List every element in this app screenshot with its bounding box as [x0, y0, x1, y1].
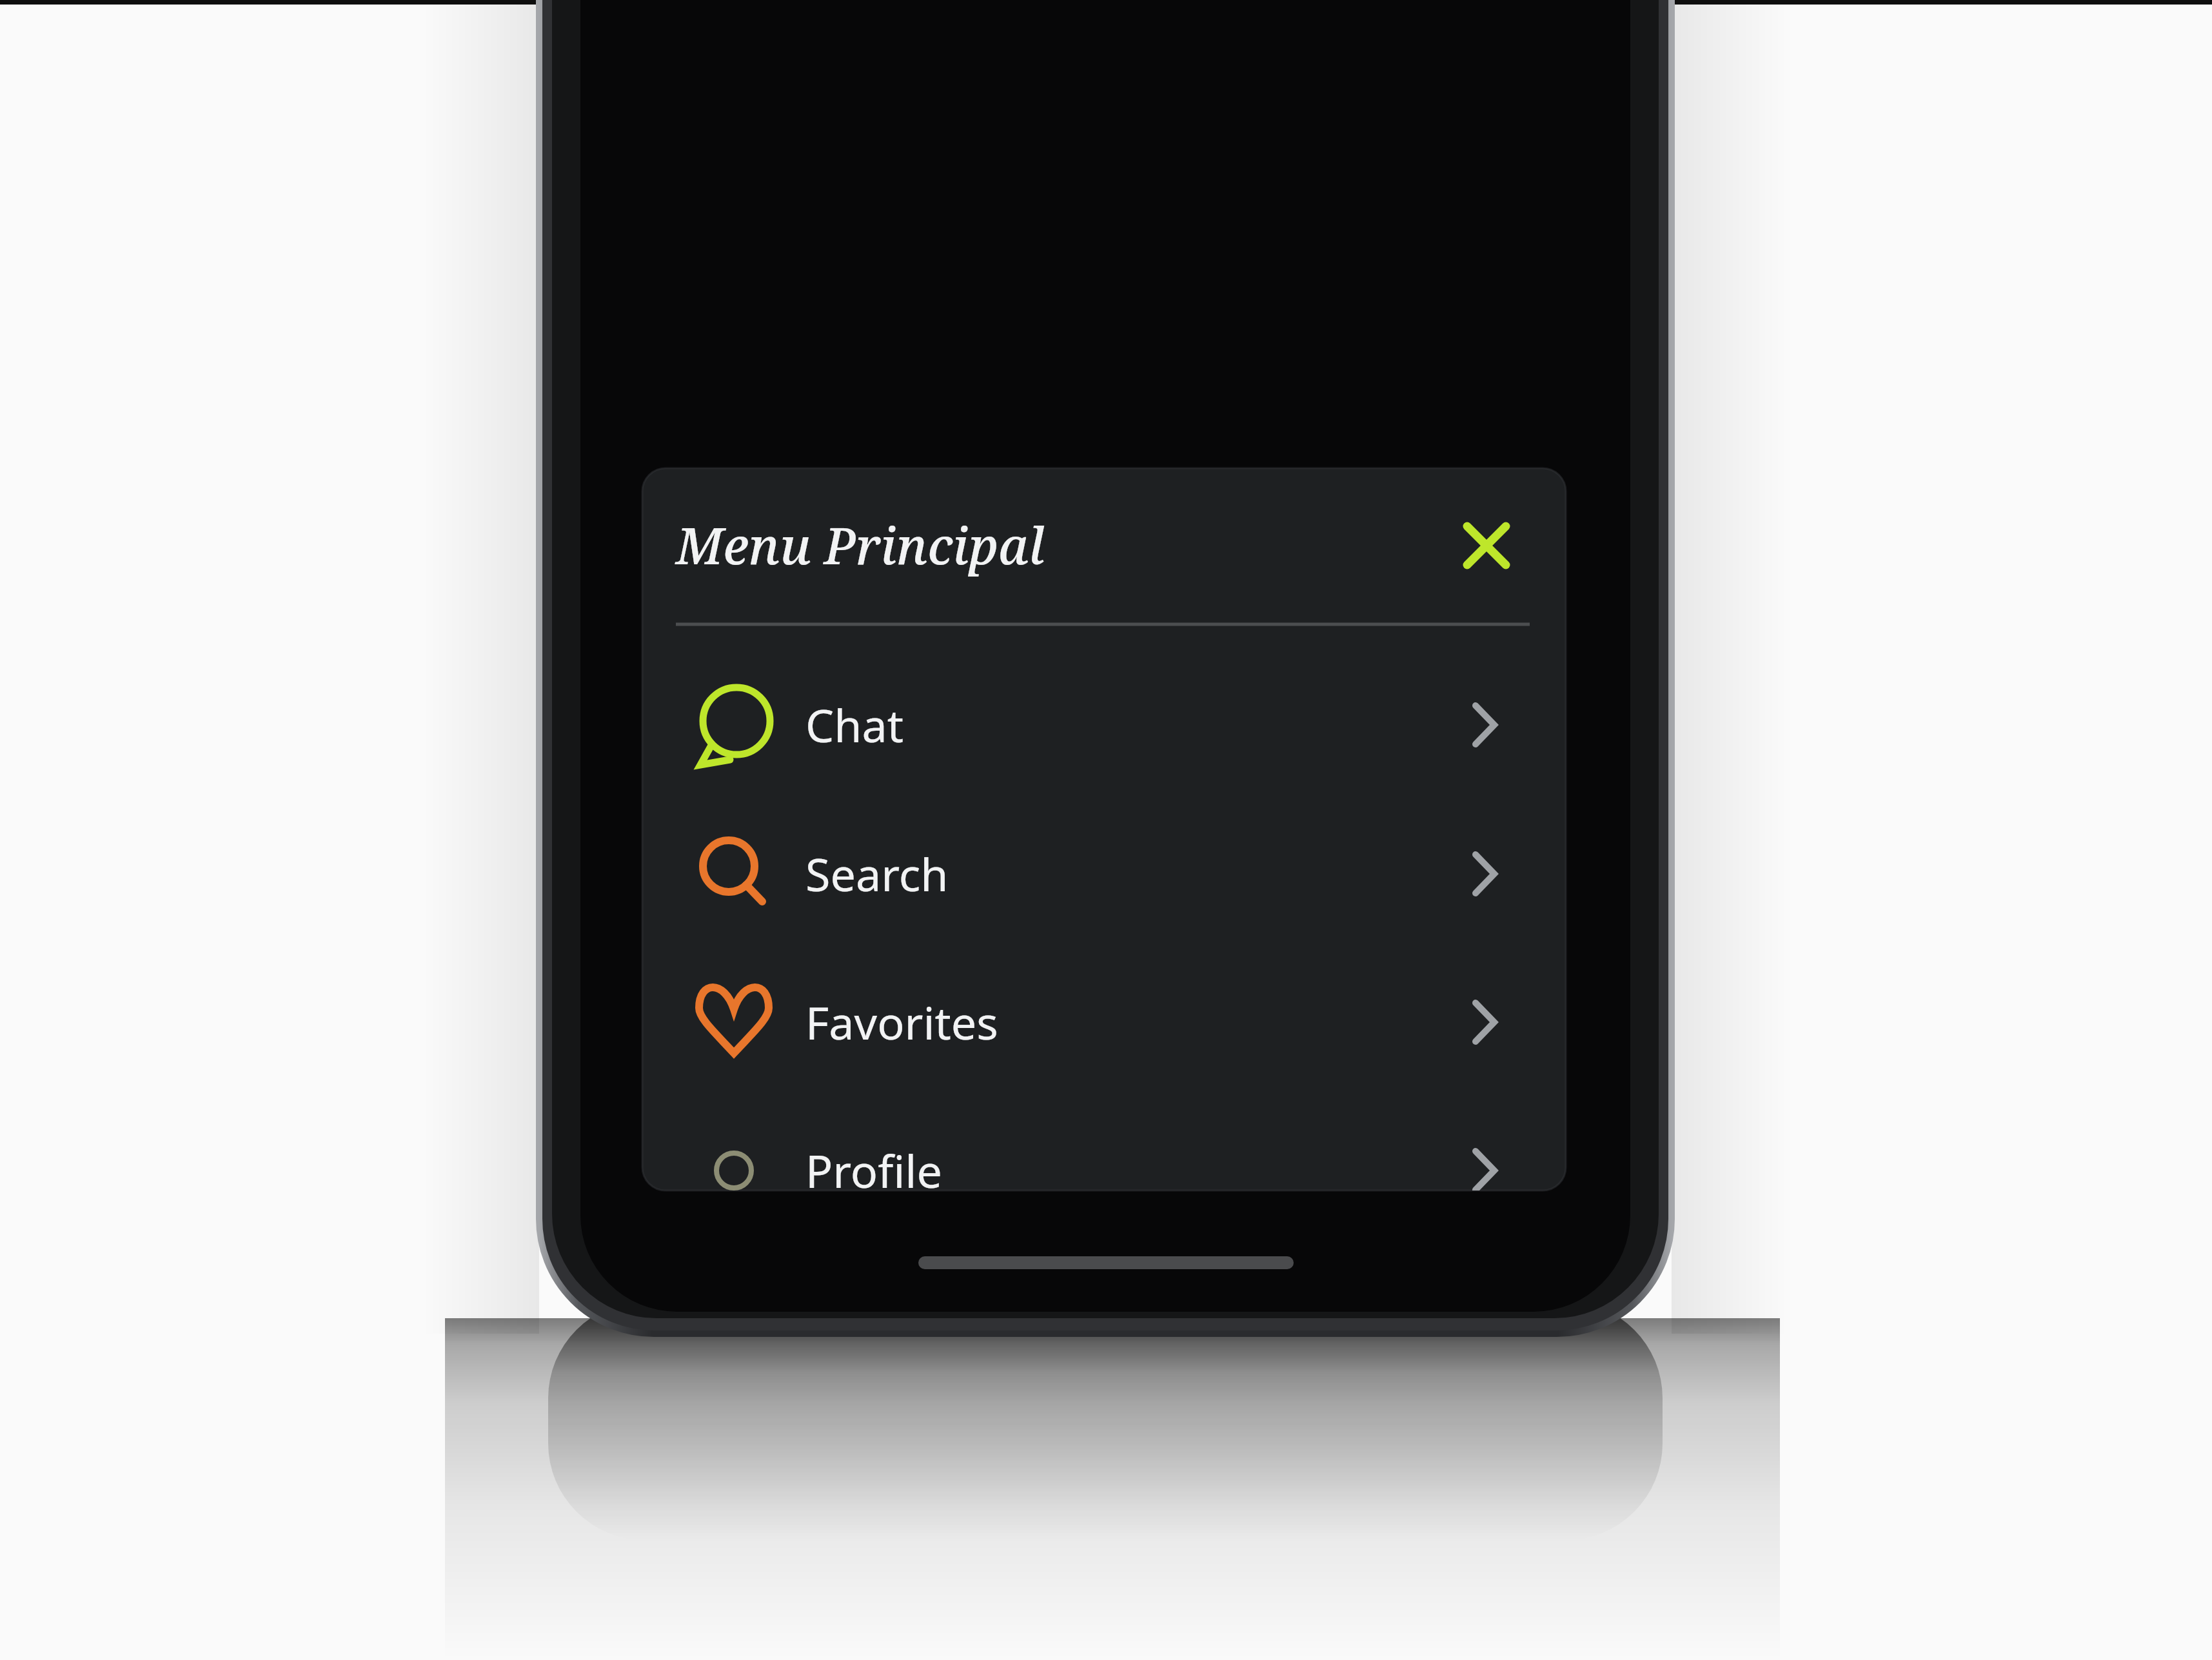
- staticText: Chat: [805, 694, 904, 755]
- button[interactable]: [642, 804, 1566, 944]
- staticText: Favorites: [805, 991, 998, 1052]
- staticText: Search: [805, 843, 949, 904]
- staticText: Menu Principal: [676, 511, 1045, 579]
- staticText: Profile: [805, 1140, 942, 1201]
- button[interactable]: [642, 953, 1566, 1092]
- button[interactable]: [642, 1101, 1566, 1240]
- button[interactable]: [642, 655, 1566, 795]
- button[interactable]: Close menu: [1445, 504, 1528, 588]
